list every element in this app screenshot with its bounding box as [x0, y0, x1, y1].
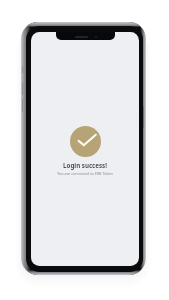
staticText: You are connected to ERB Token — [31, 171, 139, 176]
staticText: Login success! — [31, 161, 139, 169]
button[interactable]: Success — [70, 126, 101, 157]
